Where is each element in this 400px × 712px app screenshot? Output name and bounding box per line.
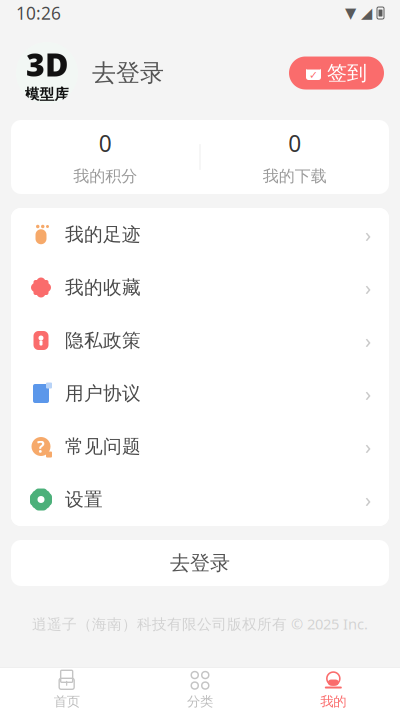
staticText: › — [365, 486, 371, 513]
staticText: 首页 — [54, 693, 80, 710]
button[interactable]: 设置 — [11, 473, 389, 526]
staticText: 10:26 — [16, 1, 61, 24]
staticText: 我的收藏 — [65, 276, 141, 299]
staticText: › — [365, 221, 371, 248]
staticText: ◢ — [361, 5, 372, 21]
staticText: 分类 — [187, 693, 213, 710]
staticText: ✓ — [309, 69, 318, 81]
staticText: 常见问题 — [65, 435, 141, 458]
staticText: 我的 — [320, 693, 346, 710]
button[interactable]: 0 — [200, 128, 389, 186]
staticText: 设置 — [65, 488, 103, 511]
button[interactable]: 去登录 — [11, 540, 389, 586]
staticText: 我的下载 — [263, 166, 327, 186]
staticText: ? — [37, 436, 45, 457]
staticText: 去登录 — [170, 551, 230, 575]
staticText: 去登录 — [92, 58, 164, 88]
staticText: 0 — [288, 128, 301, 158]
button[interactable]: 用户协议 — [11, 367, 389, 420]
staticText: 模型库 — [24, 85, 69, 103]
staticText: › — [365, 380, 371, 407]
staticText: ▼ — [345, 5, 356, 21]
staticText: 0 — [99, 128, 112, 158]
button[interactable]: 3D — [16, 42, 164, 104]
staticText: 我的足迹 — [65, 223, 141, 246]
staticText: 隐私政策 — [65, 329, 141, 352]
button[interactable]: 我的 — [267, 668, 400, 712]
staticText: › — [365, 433, 371, 460]
button[interactable]: 隐私政策 — [11, 314, 389, 367]
staticText: › — [365, 327, 371, 354]
button[interactable]: 分类 — [133, 668, 267, 712]
button[interactable]: 首页 — [0, 668, 133, 712]
staticText: 用户协议 — [65, 382, 141, 405]
staticText: › — [365, 274, 371, 301]
button[interactable]: 我的收藏 — [11, 261, 389, 314]
staticText: 逍遥子（海南）科技有限公司版权所有 © 2025 Inc. — [32, 614, 368, 633]
staticText: 签到 — [327, 61, 367, 85]
button[interactable]: ✓ — [289, 56, 384, 89]
staticText: 3D — [26, 43, 68, 85]
button[interactable]: ? — [11, 420, 389, 473]
staticText: 我的积分 — [73, 166, 137, 186]
button[interactable]: 我的足迹 — [11, 208, 389, 261]
button[interactable]: 0 — [11, 128, 199, 186]
